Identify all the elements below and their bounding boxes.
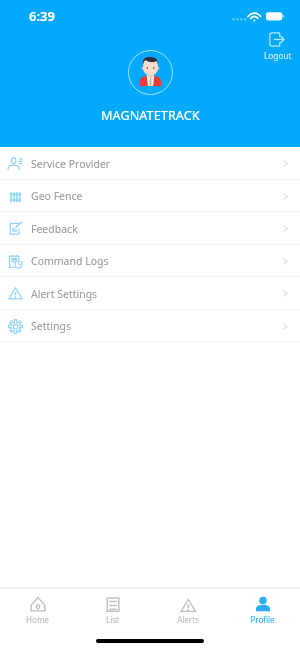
staticText: Geo Fence <box>31 189 83 203</box>
staticText: Service Provider <box>31 157 111 171</box>
staticText: Logout <box>264 50 292 61</box>
button[interactable]: Alert Settings <box>0 277 300 310</box>
staticText: Home <box>26 614 49 625</box>
staticText: MAGNATETRACK <box>101 107 200 124</box>
button[interactable]: Logout <box>260 30 294 62</box>
staticText: Alerts <box>177 614 199 625</box>
button[interactable]: Profile <box>225 596 300 625</box>
staticText: 6:39 <box>29 7 55 25</box>
staticText: Settings <box>31 319 71 333</box>
button[interactable]: Alerts <box>150 596 225 625</box>
button[interactable]: Service Provider <box>0 147 300 180</box>
button[interactable]: Feedback <box>0 212 300 245</box>
button[interactable]: Settings <box>0 310 300 342</box>
button[interactable]: Geo Fence <box>0 180 300 212</box>
staticText: Profile <box>250 614 275 625</box>
button[interactable]: List <box>75 596 150 625</box>
staticText: Command Logs <box>31 254 109 268</box>
staticText: List <box>106 614 119 625</box>
button[interactable]: Home <box>0 596 75 625</box>
staticText: Alert Settings <box>31 287 98 301</box>
staticText: Feedback <box>31 222 78 236</box>
button[interactable]: Command Logs <box>0 245 300 277</box>
